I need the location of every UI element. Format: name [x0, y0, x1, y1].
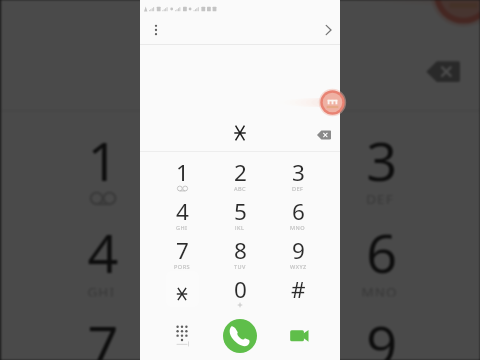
button[interactable]: Call [223, 319, 257, 353]
staticText: MNO [290, 224, 306, 230]
staticText: 5 [227, 216, 258, 289]
staticText: 3 [292, 157, 305, 188]
staticText: GHI [176, 224, 188, 230]
staticText: 5 [234, 196, 247, 227]
button[interactable]: 1 [32, 112, 172, 204]
button[interactable]: 2 [172, 112, 311, 204]
button[interactable]: 8 [172, 297, 311, 360]
staticText: 6 [366, 216, 397, 289]
button[interactable]: 9 [269, 230, 327, 269]
button[interactable]: 7 [32, 297, 172, 360]
button[interactable]: 1 [153, 152, 211, 191]
staticText: JKL [229, 282, 253, 297]
staticText: JKL [235, 224, 245, 230]
staticText: 7 [87, 308, 119, 360]
button[interactable]: 6 [311, 204, 450, 297]
button[interactable]: 2 [211, 152, 269, 191]
staticText: 8 [234, 235, 247, 266]
button[interactable]: 7 [153, 230, 211, 269]
staticText: 4 [176, 196, 189, 227]
button[interactable]: Keypad [167, 319, 197, 349]
staticText: 2 [227, 124, 258, 197]
button[interactable]: 9 [311, 297, 450, 360]
staticText: 9 [292, 235, 305, 266]
staticText: 0 [234, 274, 247, 305]
staticText: 9 [366, 308, 397, 360]
button[interactable]: Backspace [312, 127, 336, 143]
button[interactable]: Expand [315, 20, 335, 40]
button[interactable]: 5 [211, 191, 269, 230]
button[interactable]: 5 [172, 204, 311, 297]
button[interactable]: More options [146, 20, 166, 40]
staticText: WXYZ [290, 263, 307, 269]
staticText: DEF [292, 185, 304, 191]
staticText: ABC [234, 185, 247, 191]
button[interactable]: 3 [269, 152, 327, 191]
staticText: 4 [87, 216, 119, 289]
staticText: PQRS [174, 263, 191, 269]
staticText: 1 [87, 124, 119, 197]
staticText: 3 [366, 124, 397, 197]
staticText: 7 [176, 235, 189, 266]
button[interactable]: Backspace [414, 53, 472, 91]
staticText: TUV [234, 263, 246, 269]
button[interactable]: 6 [269, 191, 327, 230]
staticText: 6 [292, 196, 305, 227]
staticText: 8 [227, 308, 258, 360]
staticText: 2 [234, 157, 247, 188]
button[interactable]: 0 [211, 269, 269, 308]
button[interactable]: # [269, 269, 327, 308]
staticText: 1 [176, 157, 189, 188]
button[interactable]: Video call [284, 320, 312, 348]
staticText: # [291, 274, 306, 305]
button[interactable] [153, 269, 211, 308]
button[interactable]: 8 [211, 230, 269, 269]
staticText: MNO [361, 282, 400, 297]
button[interactable]: 4 [153, 191, 211, 230]
staticText: ABC [227, 190, 258, 204]
button[interactable]: 4 [32, 204, 172, 297]
button[interactable]: 3 [311, 112, 450, 204]
